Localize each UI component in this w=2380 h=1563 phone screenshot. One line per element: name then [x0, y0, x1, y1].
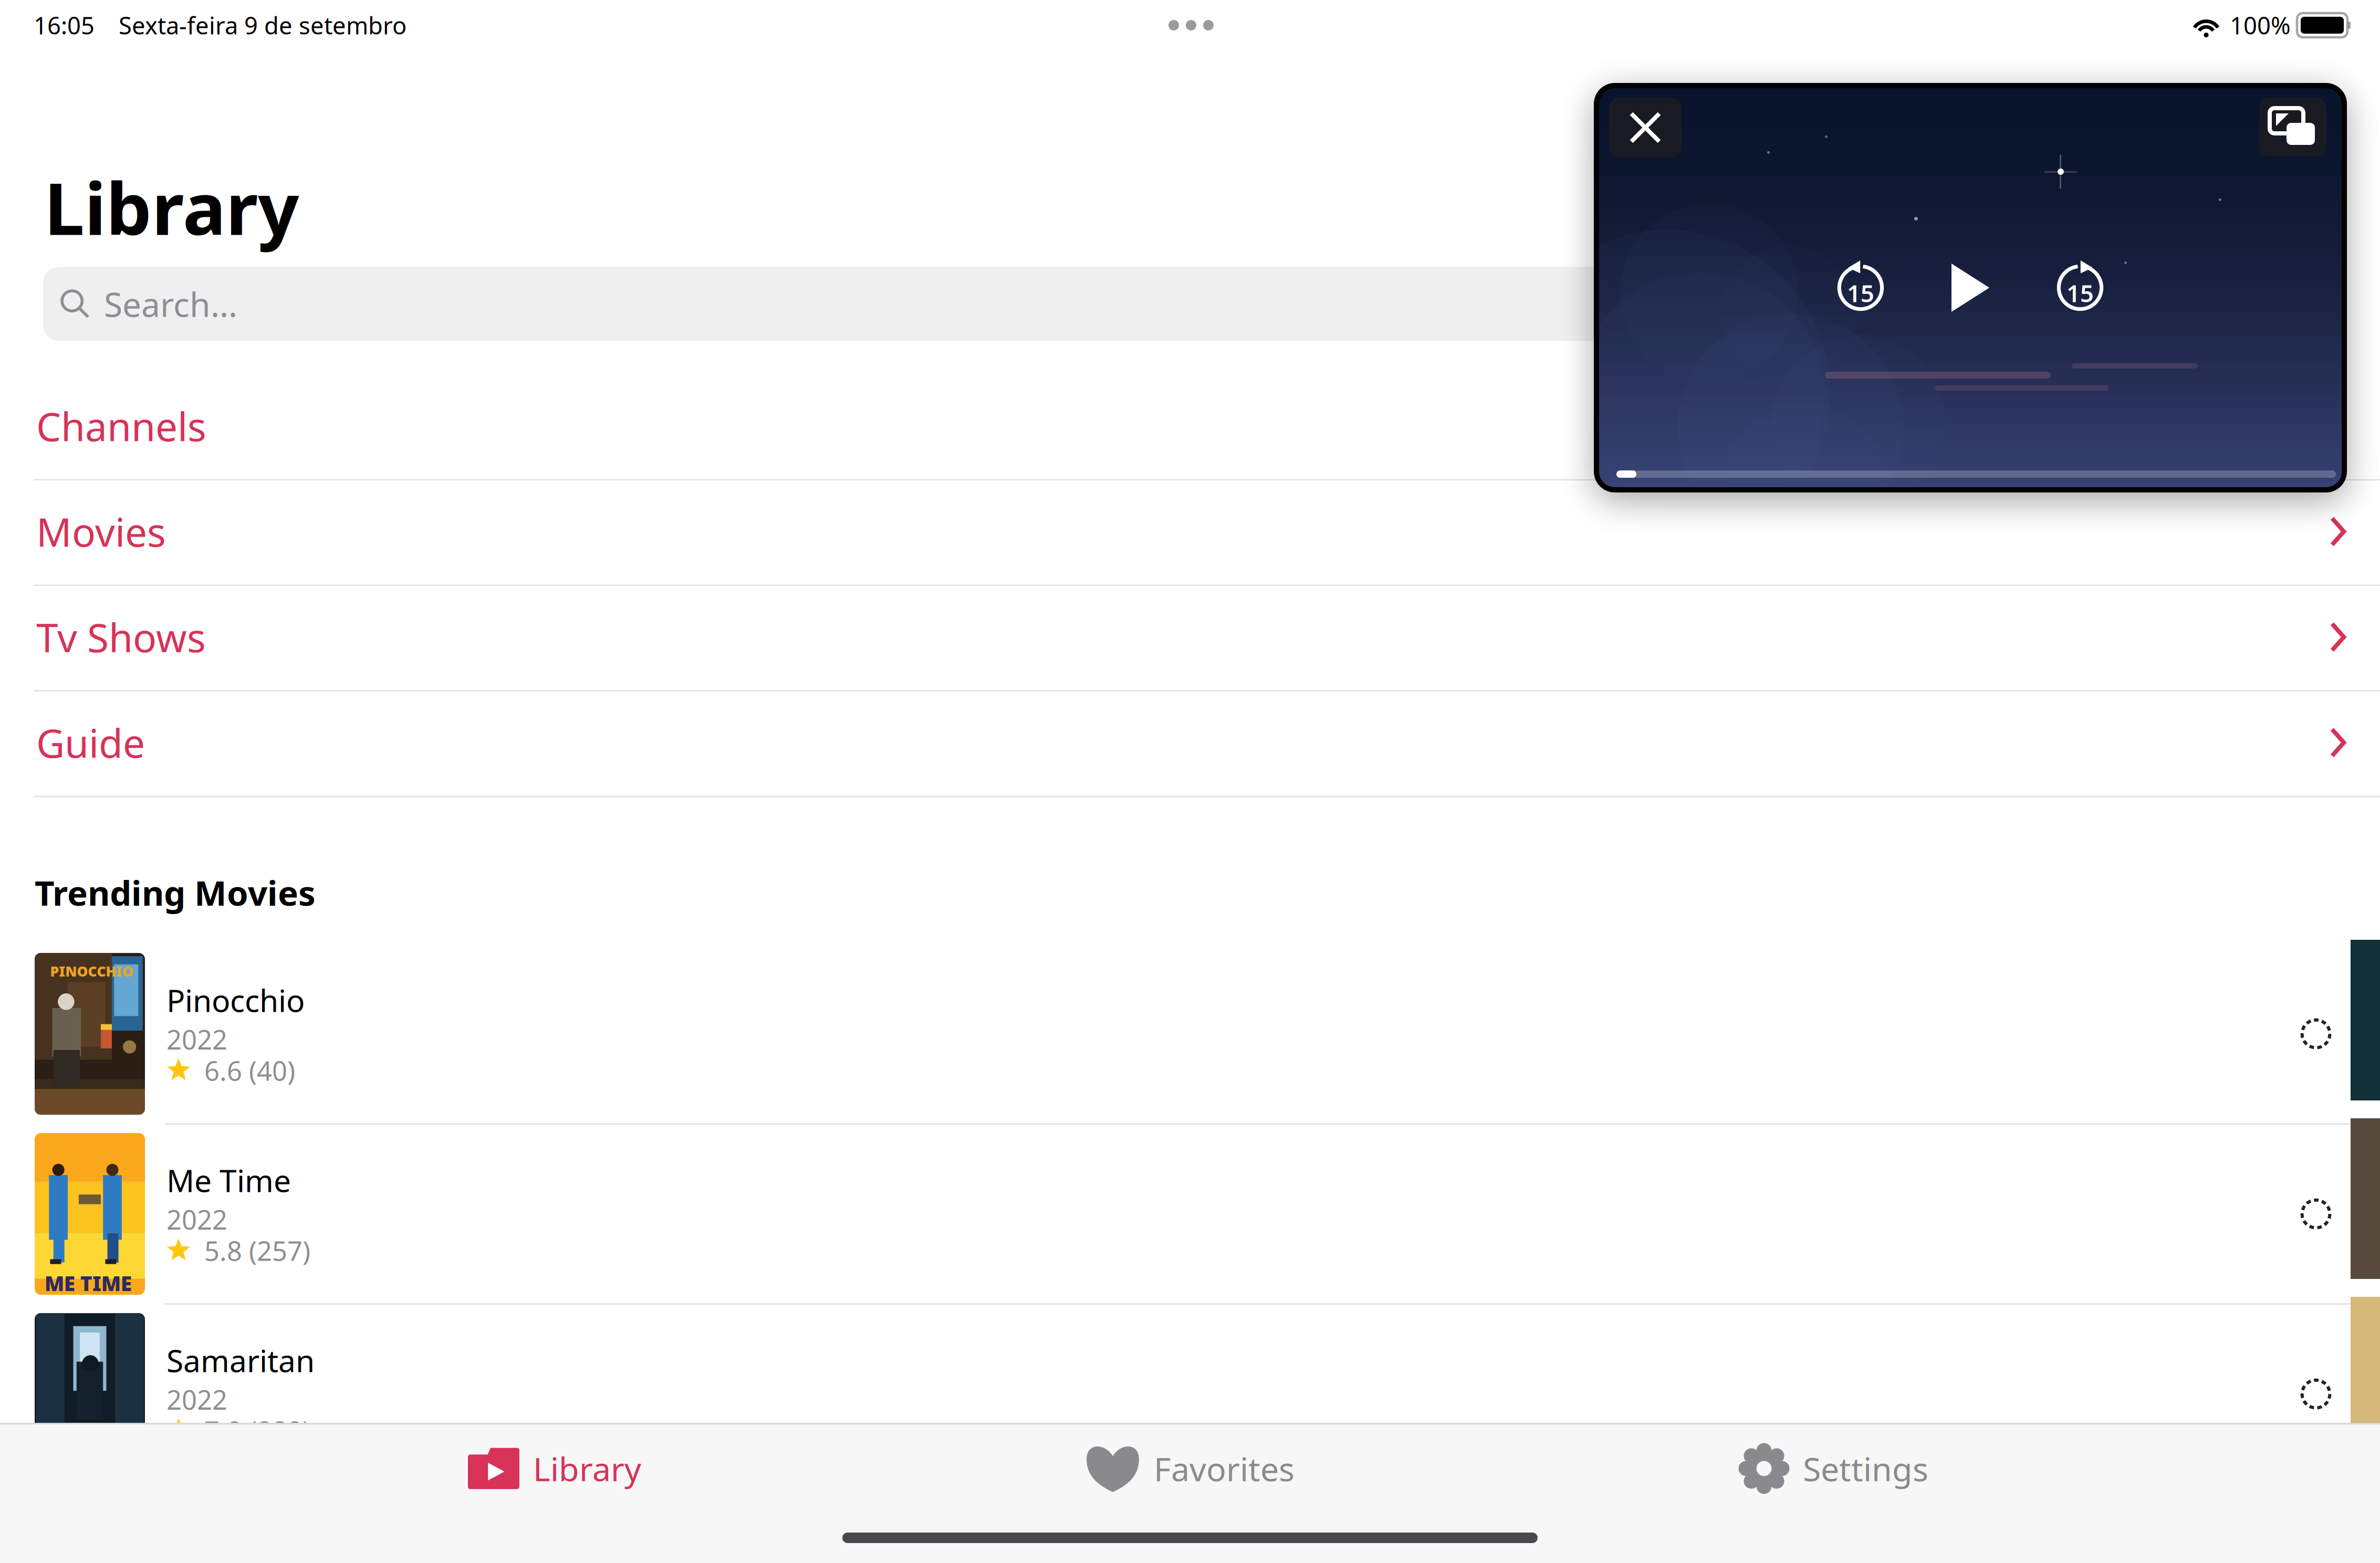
button[interactable]: SAMARITAN: [0, 1305, 2380, 1485]
staticText: 5.8 (257): [204, 1233, 310, 1268]
staticText: Trending Movies: [35, 870, 316, 915]
button[interactable]: ME TIME: [0, 1125, 2380, 1305]
staticText: Me Time: [166, 1160, 291, 1201]
staticText: ME TIME: [45, 1270, 132, 1297]
staticText: Settings: [1803, 1447, 1928, 1490]
staticText: Pinocchio: [166, 980, 305, 1021]
button[interactable]: Tv Shows: [0, 586, 2380, 692]
button[interactable]: Play: [1947, 264, 1993, 312]
staticText: Samaritan: [166, 1340, 315, 1381]
staticText: PINOCCHIO: [50, 962, 134, 980]
button[interactable]: Close picture in picture: [1609, 98, 1682, 158]
staticText: Tv Shows: [36, 611, 206, 663]
staticText: 7.0 (880): [204, 1413, 310, 1448]
staticText: 2022: [166, 1022, 227, 1057]
staticText: 6.6 (40): [204, 1053, 295, 1088]
button[interactable]: Favorites: [1064, 1424, 1316, 1513]
staticText: Library: [44, 159, 299, 255]
staticText: 15: [2066, 277, 2094, 309]
staticText: Channels: [36, 400, 206, 452]
button[interactable]: Search...: [43, 267, 2337, 341]
button[interactable]: Settings: [1718, 1424, 1949, 1513]
button[interactable]: Back 15 seconds: [1835, 262, 1886, 313]
button[interactable]: Forward 15 seconds: [2054, 262, 2106, 313]
button[interactable]: Restore full screen: [2259, 98, 2326, 156]
staticText: Search...: [104, 282, 237, 326]
staticText: Library: [533, 1447, 641, 1490]
staticText: Sexta-feira 9 de setembro: [119, 9, 406, 41]
button[interactable]: Library: [447, 1424, 662, 1513]
staticText: Favorites: [1154, 1447, 1295, 1490]
button[interactable]: Guide: [0, 692, 2380, 797]
staticText: 2022: [166, 1202, 227, 1237]
staticText: 100%: [2230, 9, 2291, 41]
button[interactable]: Channels: [0, 375, 2380, 481]
staticText: Guide: [36, 717, 145, 769]
button[interactable]: PINOCCHIO: [0, 945, 2380, 1125]
staticText: 15: [1847, 277, 1874, 309]
button[interactable]: Movies: [0, 481, 2380, 586]
staticText: 2022: [166, 1382, 227, 1417]
staticText: 16:05: [34, 9, 95, 41]
staticText: Movies: [36, 505, 166, 558]
